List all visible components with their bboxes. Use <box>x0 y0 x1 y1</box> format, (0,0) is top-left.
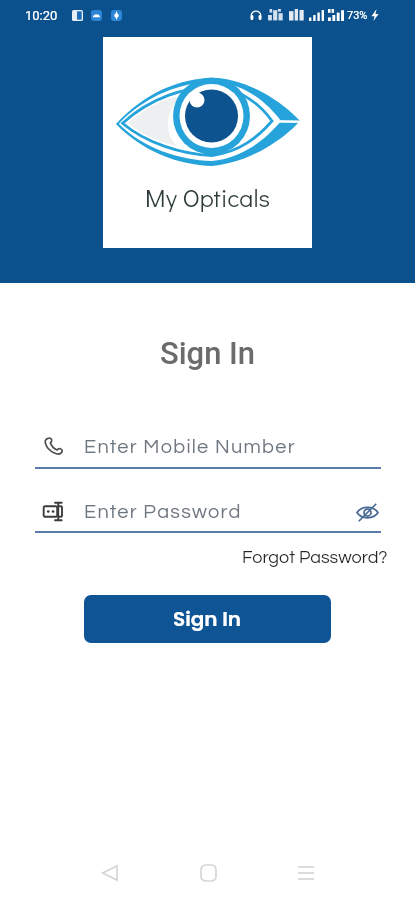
staticText: 10:20 <box>25 8 58 23</box>
staticText: Sign In <box>173 605 242 633</box>
button[interactable]: Show password <box>353 498 381 526</box>
button[interactable]: Enter Mobile Number <box>35 427 381 467</box>
staticText: My Opticals <box>145 181 271 214</box>
button[interactable]: Home <box>188 853 228 893</box>
staticText: 73% <box>347 9 368 22</box>
staticText: Enter Mobile Number <box>84 437 296 458</box>
button[interactable]: Sign In <box>84 595 331 643</box>
staticText: Sign In <box>0 335 415 371</box>
button[interactable]: Forgot Password? <box>230 544 388 570</box>
staticText: Forgot Password? <box>242 548 388 567</box>
button[interactable]: Back <box>89 853 129 893</box>
button[interactable]: Enter Password <box>35 492 381 532</box>
staticText: Enter Password <box>84 502 381 523</box>
button[interactable]: Recent apps <box>286 853 326 893</box>
